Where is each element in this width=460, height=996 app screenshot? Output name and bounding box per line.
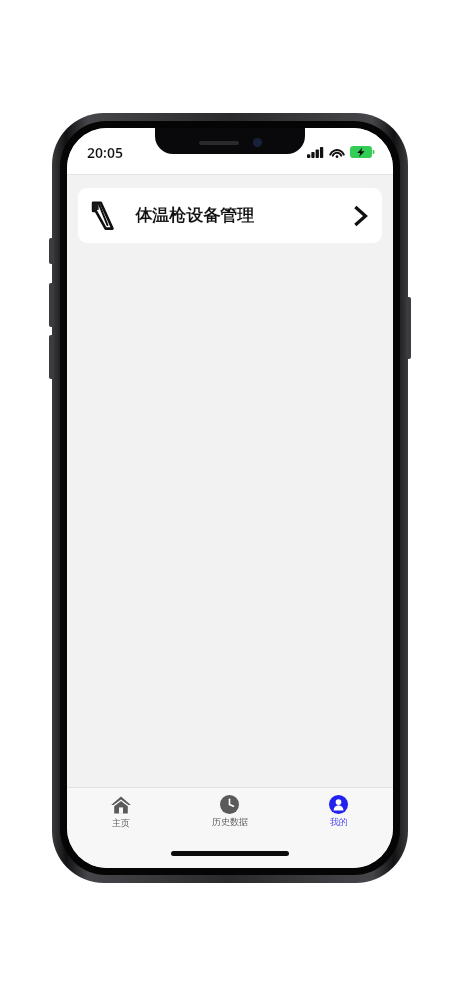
staticText: 主页 xyxy=(112,817,130,828)
staticText: 体温枪设备管理 xyxy=(135,205,254,226)
button[interactable]: 主页 xyxy=(67,788,175,834)
button[interactable]: 历史数据 xyxy=(175,788,284,834)
staticText: 我的 xyxy=(330,816,348,827)
button[interactable]: 体温枪设备管理 xyxy=(78,188,382,243)
staticText: 20:05 xyxy=(87,143,123,162)
button[interactable]: 我的 xyxy=(284,788,393,834)
staticText: 历史数据 xyxy=(212,816,248,827)
